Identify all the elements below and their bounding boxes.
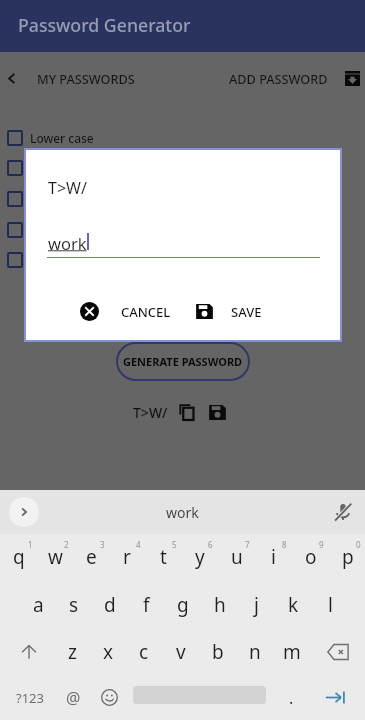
button[interactable]: Save password: [208, 403, 227, 422]
button[interactable]: e: [72, 534, 108, 581]
staticText: e: [86, 544, 97, 570]
staticText: @: [66, 687, 81, 709]
button[interactable]: s: [56, 581, 92, 628]
button[interactable]: o: [291, 534, 328, 581]
button[interactable]: y: [180, 534, 217, 581]
button[interactable]: u: [217, 534, 254, 581]
button[interactable]: j: [238, 581, 275, 628]
button[interactable]: Voice input: [331, 500, 355, 524]
staticText: t: [160, 544, 167, 570]
staticText: m: [283, 639, 301, 665]
button[interactable]: GENERATE PASSWORD: [116, 342, 250, 381]
button[interactable]: Emoji: [92, 675, 133, 720]
button[interactable]: z: [54, 628, 90, 675]
staticText: Password Generator: [18, 13, 191, 37]
button[interactable]: Special chars: [0, 216, 365, 244]
button[interactable]: .: [271, 675, 312, 720]
button[interactable]: r: [108, 534, 144, 581]
staticText: l: [328, 592, 333, 618]
staticText: x: [103, 639, 114, 665]
staticText: work: [48, 232, 87, 254]
staticText: k: [288, 592, 299, 618]
button[interactable]: c: [126, 628, 162, 675]
staticText: Special chars: [30, 222, 105, 238]
button[interactable]: Lower case: [0, 124, 365, 152]
button[interactable]: work: [166, 503, 199, 522]
button[interactable]: a: [20, 581, 56, 628]
button[interactable]: Copy: [177, 403, 196, 422]
button[interactable]: Enter: [312, 675, 365, 720]
staticText: z: [68, 639, 77, 665]
button[interactable]: Back: [0, 66, 24, 90]
button[interactable]: More suggestions: [9, 497, 39, 527]
staticText: y: [195, 544, 205, 570]
button[interactable]: q: [0, 534, 36, 581]
staticText: c: [139, 639, 149, 665]
staticText: b: [212, 639, 224, 665]
staticText: n: [249, 639, 261, 665]
staticText: g: [177, 592, 189, 618]
staticText: Numbers: [30, 191, 84, 207]
staticText: 2: [64, 539, 69, 550]
staticText: CANCEL: [121, 303, 171, 321]
button[interactable]: h: [201, 581, 238, 628]
staticText: f: [143, 592, 150, 618]
staticText: 1: [28, 539, 33, 550]
staticText: q: [13, 544, 25, 570]
staticText: p: [342, 544, 354, 570]
button[interactable]: Backspace: [310, 628, 365, 675]
staticText: o: [305, 544, 317, 570]
staticText: i: [271, 544, 276, 570]
staticText: SAVE: [231, 303, 262, 321]
button[interactable]: Ambiguous: [0, 246, 365, 274]
staticText: d: [104, 592, 116, 618]
button[interactable]: d: [92, 581, 128, 628]
button[interactable]: f: [128, 581, 164, 628]
staticText: u: [231, 544, 243, 570]
button[interactable]: v: [162, 628, 199, 675]
staticText: w: [48, 544, 63, 570]
staticText: 9: [319, 539, 324, 550]
staticText: 8: [282, 539, 287, 550]
staticText: j: [254, 592, 259, 618]
button[interactable]: ADD PASSWORD: [229, 70, 328, 87]
staticText: s: [69, 592, 79, 618]
staticText: v: [176, 639, 186, 665]
button[interactable]: l: [312, 581, 349, 628]
button[interactable]: m: [273, 628, 310, 675]
button[interactable]: n: [236, 628, 273, 675]
button[interactable]: ?123: [0, 675, 52, 720]
button[interactable]: x: [90, 628, 126, 675]
staticText: Ambiguous: [30, 252, 96, 268]
staticText: T>W/: [133, 403, 168, 422]
button[interactable]: Shift: [0, 628, 54, 675]
staticText: Lower case: [30, 130, 94, 146]
button[interactable]: SAVE: [195, 302, 262, 321]
button[interactable]: Numbers: [0, 185, 365, 213]
button[interactable]: w: [36, 534, 72, 581]
button[interactable]: p: [328, 534, 365, 581]
staticText: .: [289, 687, 294, 709]
staticText: 7: [245, 539, 250, 550]
staticText: a: [33, 592, 44, 618]
staticText: ?123: [16, 689, 44, 707]
button[interactable]: Save all: [342, 68, 362, 88]
staticText: r: [123, 544, 131, 570]
button[interactable]: k: [275, 581, 312, 628]
button[interactable]: @: [52, 675, 92, 720]
button[interactable]: t: [144, 534, 180, 581]
staticText: 0: [356, 539, 361, 550]
button[interactable]: g: [164, 581, 201, 628]
staticText: GENERATE PASSWORD: [123, 354, 243, 369]
staticText: 6: [208, 539, 213, 550]
staticText: 3: [100, 539, 105, 550]
button[interactable]: CANCEL: [80, 302, 171, 321]
button[interactable]: i: [254, 534, 291, 581]
button[interactable]: MY PASSWORDS: [37, 70, 135, 87]
button[interactable]: Upper case: [0, 154, 365, 182]
button[interactable]: b: [199, 628, 236, 675]
staticText: T>W/: [48, 177, 87, 199]
staticText: h: [214, 592, 226, 618]
